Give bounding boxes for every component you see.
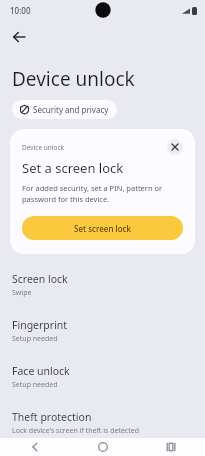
staticText: Device unlock [12, 66, 135, 92]
button[interactable]: Dismiss [167, 139, 183, 155]
button[interactable]: Set screen lock [22, 216, 183, 240]
button[interactable]: Back [6, 24, 32, 50]
button[interactable]: Home [69, 438, 137, 456]
staticText: 10:00 [10, 5, 31, 16]
button[interactable]: Screen lock [0, 270, 205, 300]
staticText: Swipe [12, 288, 32, 298]
staticText: Setup needed [12, 334, 58, 344]
staticText: Security and privacy [33, 104, 109, 115]
staticText: Lock device's screen if theft is detecte… [12, 426, 140, 436]
staticText: Theft protection [12, 410, 92, 424]
button[interactable]: Theft protection [0, 408, 205, 438]
button[interactable]: Recent apps [137, 438, 205, 456]
staticText: Face unlock [12, 364, 70, 378]
button[interactable]: Face unlock [0, 362, 205, 392]
button[interactable]: Security and privacy [12, 100, 117, 119]
staticText: Screen lock [12, 272, 68, 286]
staticText: For added security, set a PIN, pattern o… [22, 183, 183, 204]
staticText: Setup needed [12, 380, 58, 390]
staticText: Set screen lock [74, 223, 131, 234]
staticText: Fingerprint [12, 318, 68, 332]
staticText: Device unlock [22, 143, 167, 152]
staticText: Set a screen lock [22, 159, 124, 177]
button[interactable]: Fingerprint [0, 316, 205, 346]
button[interactable]: Back [0, 438, 69, 456]
